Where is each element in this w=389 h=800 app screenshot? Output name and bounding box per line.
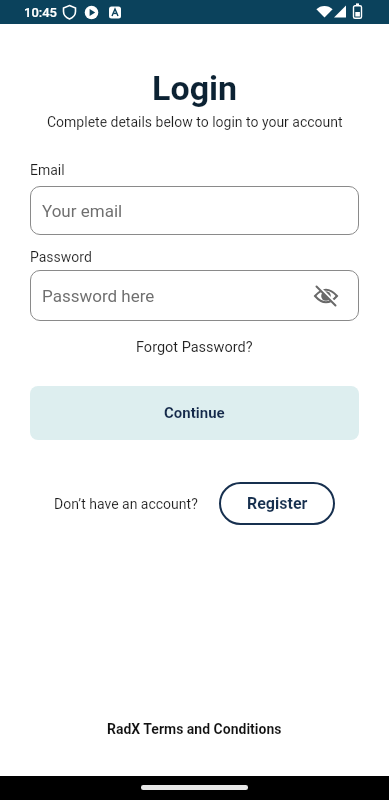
staticText: 10:45 [24,5,58,20]
staticText: Complete details below to login to your … [47,114,343,130]
button[interactable]: Your email [30,186,359,235]
staticText: Register [247,494,308,513]
staticText: Continue [164,404,225,422]
button[interactable]: Password here [30,270,359,321]
button[interactable]: RadX Terms and Conditions [107,721,282,737]
staticText: Password here [42,286,155,306]
button[interactable]: Forgot Password? [136,339,253,356]
button[interactable]: Continue [30,386,359,440]
staticText: Email [30,162,65,178]
staticText: Your email [42,201,123,221]
button[interactable]: Register [219,482,335,525]
staticText: Password [30,249,92,265]
staticText: Don’t have an account? [54,496,198,512]
button[interactable] [141,785,248,790]
staticText: Login [152,68,238,108]
